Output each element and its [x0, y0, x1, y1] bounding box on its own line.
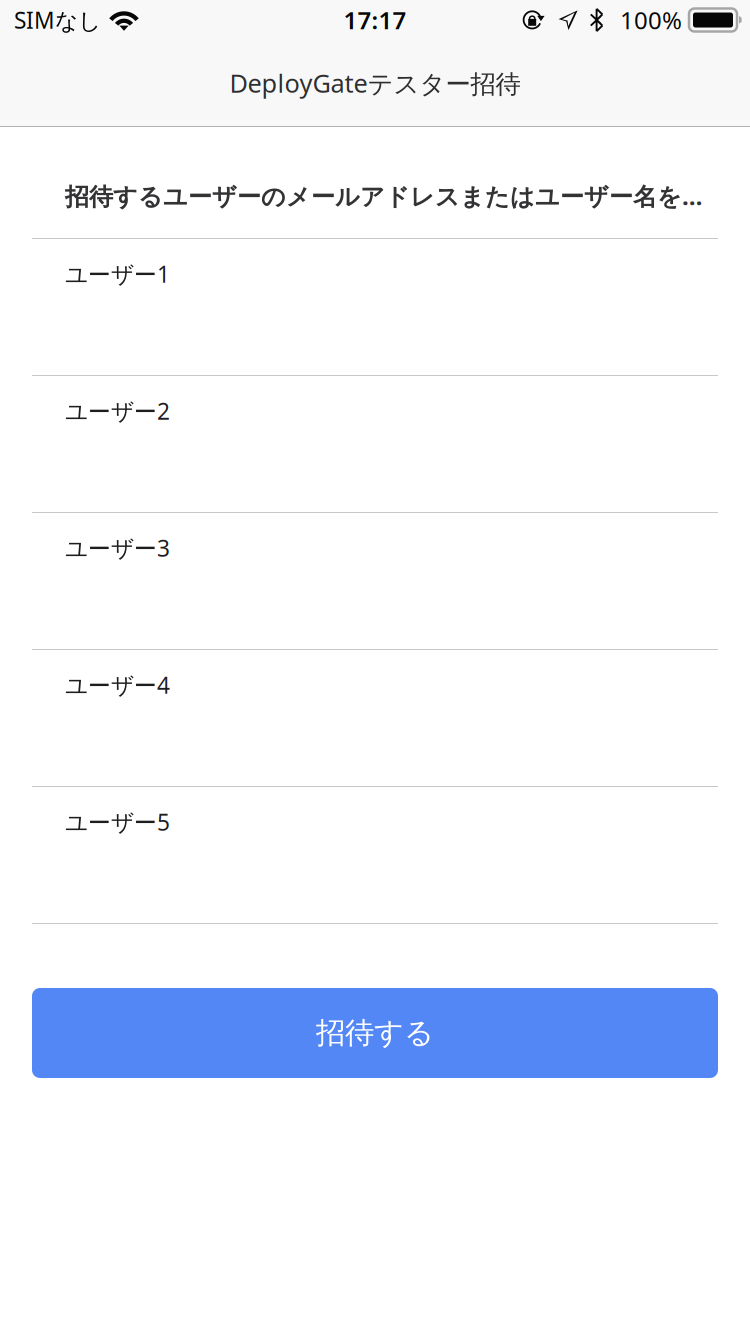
- staticText: 100%: [620, 4, 682, 36]
- staticText: ユーザー4: [65, 670, 170, 700]
- staticText: ユーザー1: [65, 259, 170, 289]
- staticText: ユーザー2: [65, 396, 170, 426]
- staticText: 招待する: [316, 1015, 434, 1051]
- button[interactable]: ユーザー5: [0, 787, 750, 923]
- button[interactable]: ユーザー1: [0, 239, 750, 375]
- button[interactable]: 招待する: [32, 988, 718, 1078]
- staticText: 17:17: [343, 4, 406, 36]
- button[interactable]: ユーザー2: [0, 376, 750, 512]
- button[interactable]: ユーザー3: [0, 513, 750, 649]
- staticText: ユーザー5: [65, 807, 170, 837]
- button[interactable]: ユーザー4: [0, 650, 750, 786]
- staticText: ユーザー3: [65, 533, 170, 563]
- staticText: SIMなし: [14, 5, 101, 35]
- staticText: DeployGateテスター招待: [229, 66, 520, 100]
- staticText: 招待するユーザーのメールアドレスまたはユーザー名を…: [65, 180, 703, 212]
